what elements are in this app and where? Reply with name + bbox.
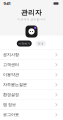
staticText: 관리자 [21, 8, 42, 17]
staticText: 이용약관 [3, 72, 19, 77]
button[interactable]: 시작하기 [17, 40, 32, 46]
button[interactable]: 앱 정보 [0, 99, 63, 109]
button[interactable]: 자주묻는질문 [0, 79, 63, 89]
staticText: 안내 [38, 42, 44, 45]
button[interactable]: 안내 [35, 40, 46, 46]
button[interactable]: 공지사항 [0, 49, 63, 59]
staticText: 시작하기 [18, 42, 30, 45]
staticText: 고객센터 [3, 62, 19, 67]
staticText: 공지사항 [3, 52, 19, 57]
staticText: 9:41 [3, 1, 10, 6]
staticText: 자주묻는질문 [3, 82, 27, 87]
button[interactable]: 환경설정 [0, 89, 63, 99]
button[interactable]: 고객센터 [0, 59, 63, 69]
staticText: 이곳에서 관리합니다 [17, 18, 45, 21]
staticText: 환경설정 [3, 92, 19, 97]
button[interactable]: 이용약관 [0, 69, 63, 79]
button[interactable]: 로그아웃 [0, 109, 63, 119]
staticText: 로그아웃 [3, 112, 19, 117]
staticText: 앱 정보 [3, 102, 16, 107]
